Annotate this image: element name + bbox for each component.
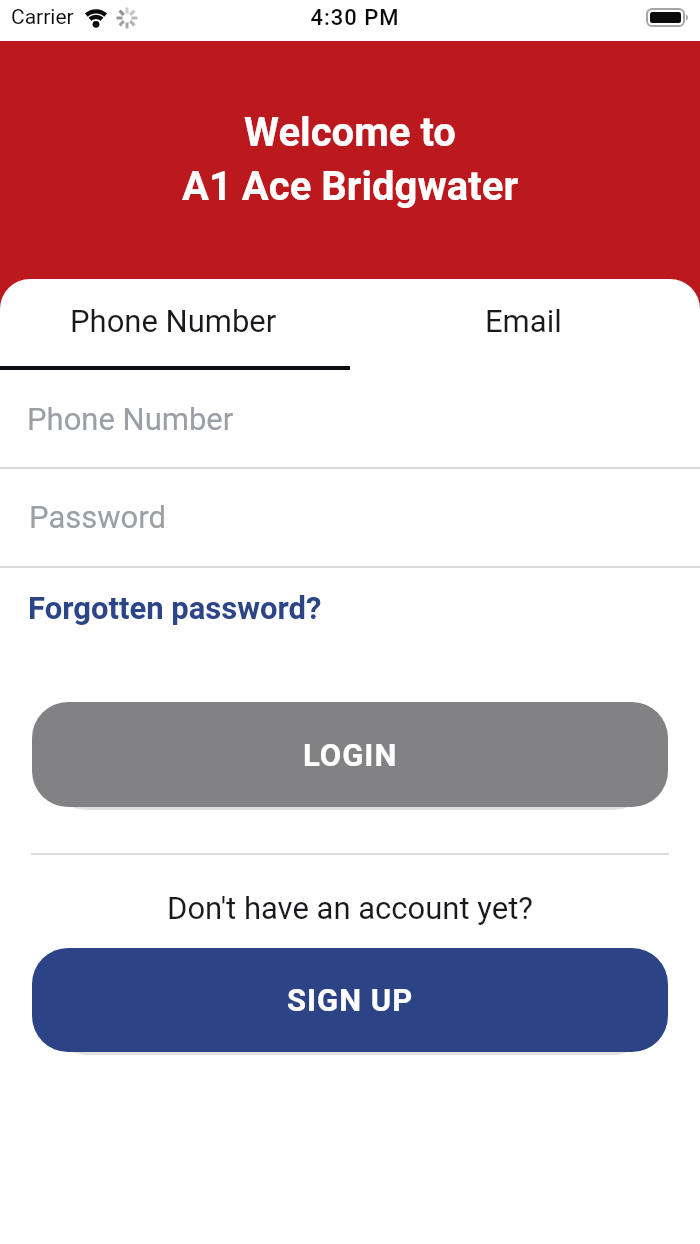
button[interactable]: Forgotten password? [28,590,322,626]
staticText: Email [485,303,562,339]
staticText: Forgotten password? [28,590,322,626]
staticText: Phone Number [27,401,234,437]
staticText: Phone Number [70,303,277,339]
button[interactable]: Password [29,482,670,552]
staticText: Carrier [11,5,74,30]
button[interactable]: Phone Number [27,384,670,454]
staticText: 4:30 PM [5,5,700,31]
staticText: Password [29,499,166,535]
staticText: Welcome to [0,109,700,156]
staticText: A1 Ace Bridgwater [0,163,700,210]
staticText: Don't have an account yet? [0,890,700,926]
staticText: SIGN UP [287,982,414,1018]
staticText: LOGIN [303,737,398,773]
button[interactable]: Phone Number [0,277,350,363]
button[interactable]: SIGN UP [32,948,668,1052]
button[interactable]: LOGIN [32,702,668,807]
button[interactable]: Email [350,277,700,363]
